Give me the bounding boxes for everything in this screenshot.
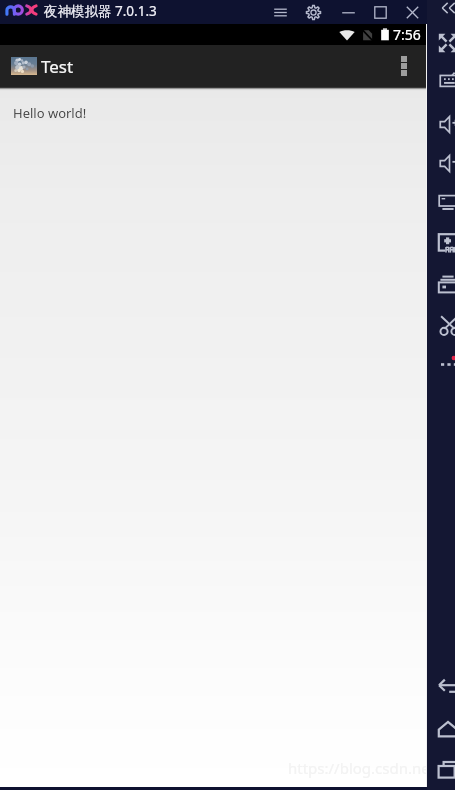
button[interactable]: Keyboard <box>439 70 455 91</box>
staticText: Hello world! <box>13 104 87 122</box>
button[interactable]: Home <box>438 720 455 740</box>
staticText: 7:56 <box>393 25 421 44</box>
button[interactable]: Volume up <box>439 114 455 135</box>
button[interactable]: Collapse sidebar <box>440 0 455 16</box>
button[interactable]: Minimize <box>336 0 360 24</box>
button[interactable]: Screenshot <box>439 315 455 336</box>
button[interactable]: Volume down <box>439 153 455 174</box>
button[interactable]: Back <box>438 678 455 698</box>
button[interactable]: Shared folder <box>438 274 455 294</box>
button[interactable]: More tools <box>439 352 455 372</box>
button[interactable]: More options <box>386 45 422 87</box>
button[interactable]: Recent apps <box>438 760 455 780</box>
button[interactable]: Install APK <box>438 233 455 253</box>
button[interactable]: Settings <box>301 0 325 24</box>
button[interactable]: Screen rotate <box>438 192 455 212</box>
button[interactable]: Fullscreen <box>438 33 455 53</box>
staticText: https://blog.csdn.net/m <box>288 758 455 778</box>
staticText: Test <box>41 55 74 78</box>
button[interactable]: Close <box>400 0 424 24</box>
button[interactable]: Menu <box>268 0 292 24</box>
button[interactable]: Maximize <box>368 0 392 24</box>
staticText: 夜神模拟器 7.0.1.3 <box>44 2 157 20</box>
